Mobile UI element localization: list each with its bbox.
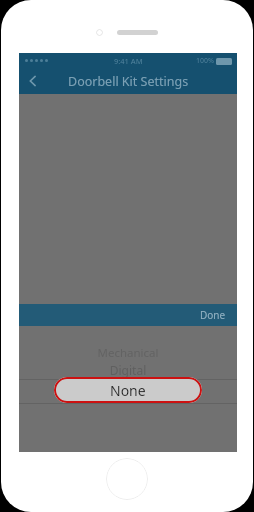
staticText: 9:41 AM xyxy=(114,56,143,66)
staticText: Doorbell Kit Settings xyxy=(68,73,189,90)
button[interactable]: Digital xyxy=(19,362,237,378)
button[interactable]: Done xyxy=(189,304,237,326)
staticText: 100% xyxy=(196,56,214,66)
staticText: None xyxy=(110,381,146,400)
staticText: Done xyxy=(200,308,226,322)
button[interactable]: Back xyxy=(19,68,47,94)
button[interactable]: None xyxy=(54,377,202,403)
